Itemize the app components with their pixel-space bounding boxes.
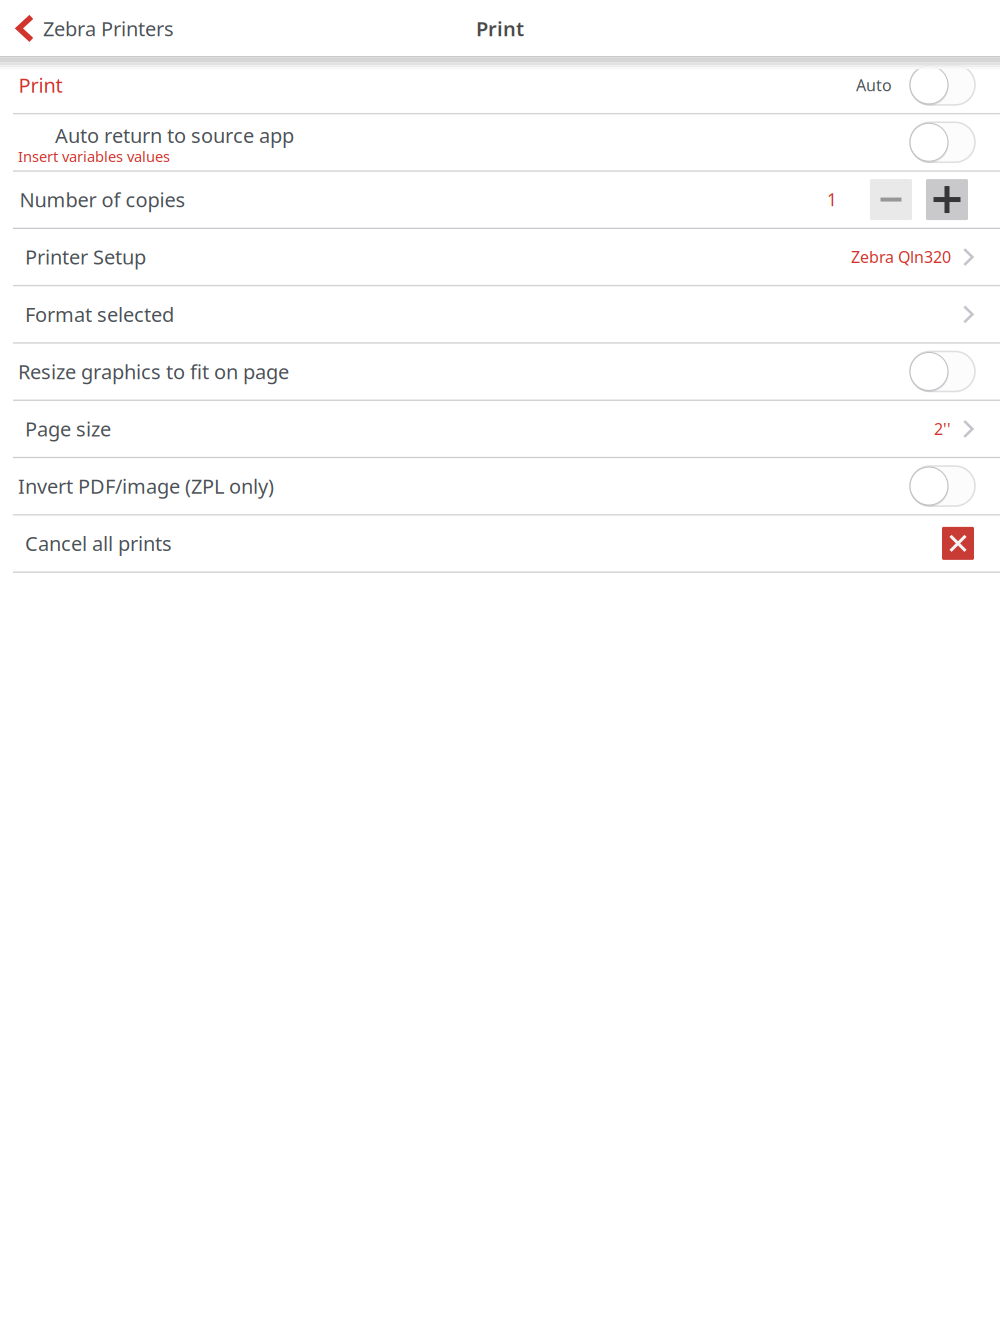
staticText: Auto (856, 74, 892, 95)
button[interactable]: Print (0, 57, 1000, 113)
button[interactable]: Decrease number of copies (870, 179, 912, 220)
staticText: Zebra Qln320 (851, 246, 951, 267)
button[interactable]: Page size (0, 401, 1000, 457)
staticText: Page size (25, 415, 111, 442)
staticText: 2'' (934, 418, 951, 439)
staticText: 1 (827, 188, 837, 211)
staticText: Print (18, 72, 62, 98)
staticText: Print (476, 15, 524, 42)
staticText: Cancel all prints (25, 530, 172, 557)
button[interactable]: Print automatically (910, 65, 975, 105)
button[interactable]: Increase number of copies (926, 179, 968, 220)
staticText: Printer Setup (25, 244, 146, 270)
button[interactable]: Cancel all prints (942, 527, 974, 560)
button[interactable]: Auto return to source app (910, 122, 975, 162)
button[interactable]: Resize graphics to fit on page (910, 351, 975, 391)
staticText: Zebra Printers (43, 15, 174, 42)
button[interactable]: Invert PDF/image (ZPL only) (910, 466, 975, 506)
button[interactable]: Printer Setup (0, 229, 1000, 285)
button[interactable]: Format selected (0, 286, 1000, 342)
staticText: Insert variables values (18, 146, 170, 166)
button[interactable]: Back to Zebra Printers (0, 0, 184, 57)
staticText: Resize graphics to fit on page (18, 358, 289, 385)
staticText: Number of copies (19, 186, 185, 213)
staticText: Invert PDF/image (ZPL only) (18, 473, 274, 499)
staticText: Auto return to source app (55, 122, 294, 149)
staticText: Format selected (25, 301, 174, 327)
